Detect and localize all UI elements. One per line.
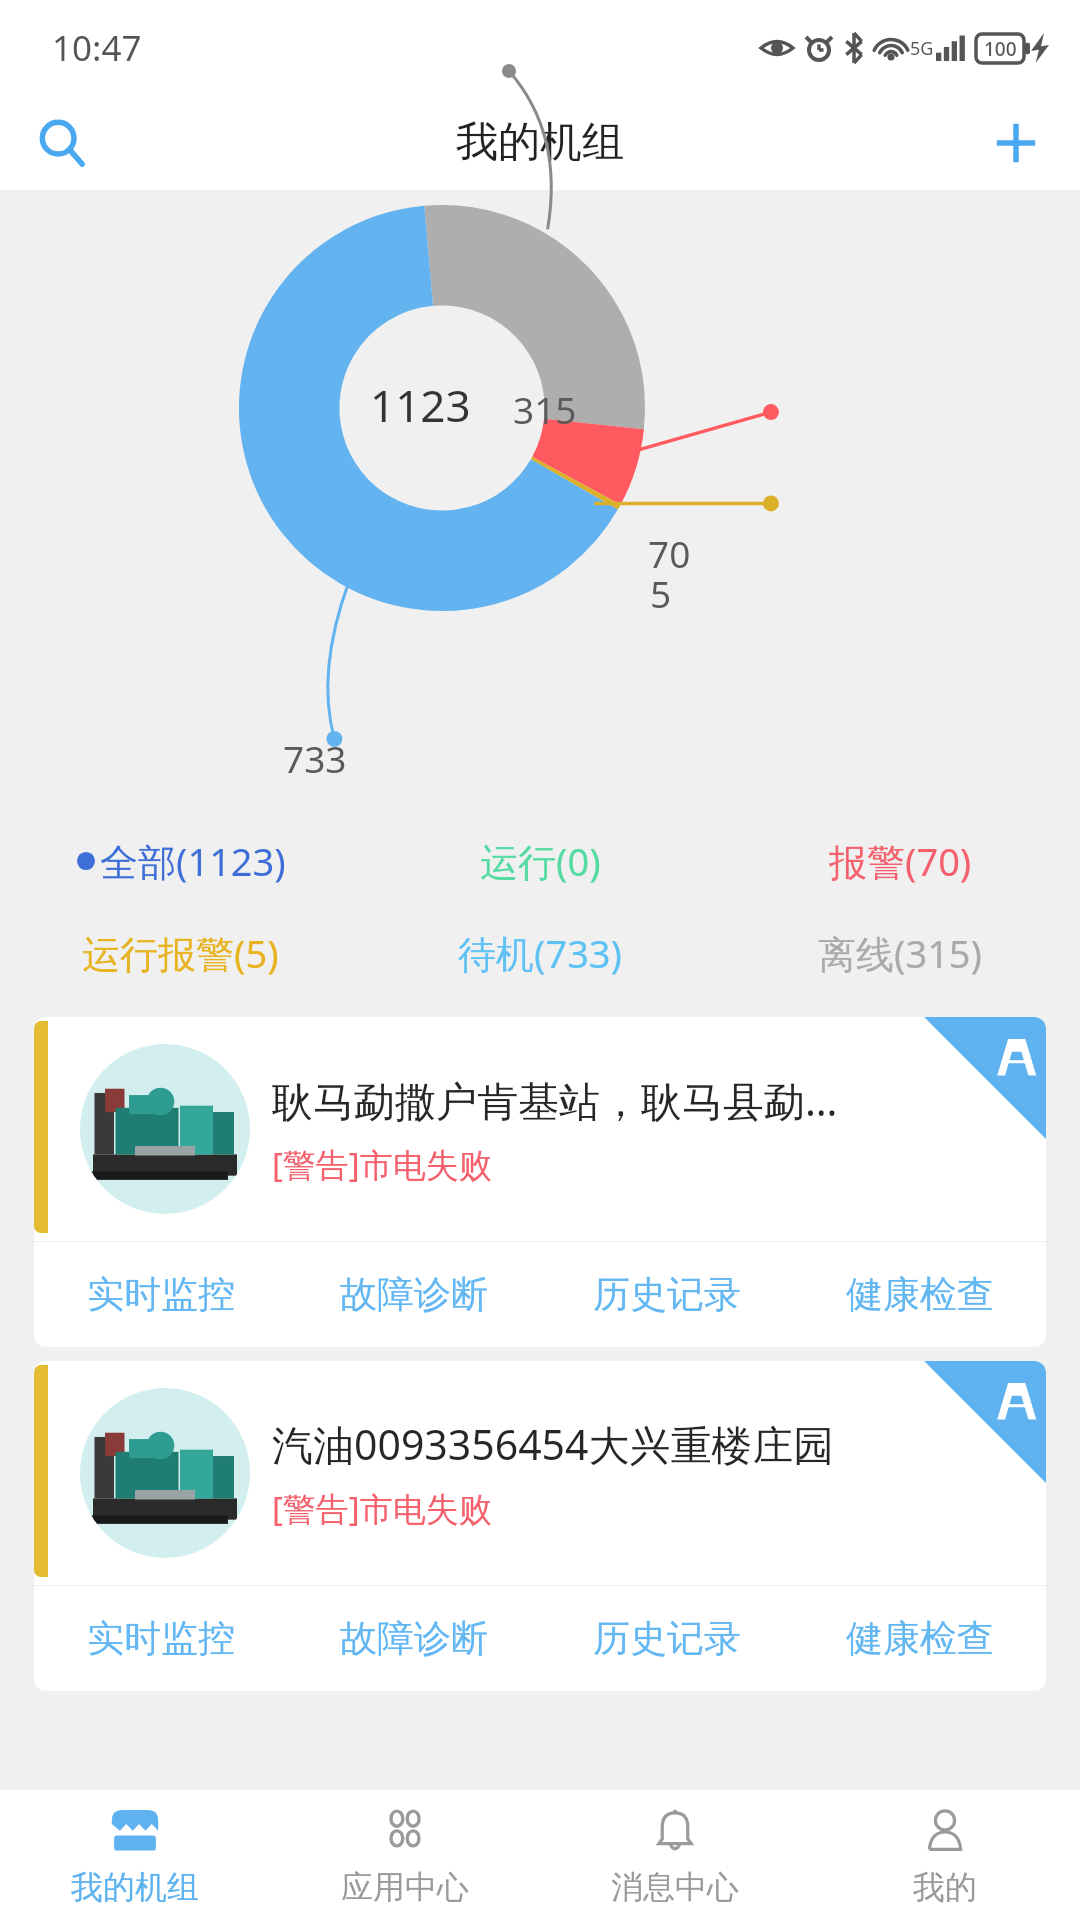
staticText: 全部(1123) — [100, 835, 286, 887]
staticText: 健康检查 — [846, 1271, 994, 1318]
staticText: 运行(0) — [480, 835, 601, 887]
staticText: 故障诊断 — [340, 1615, 488, 1662]
button[interactable]: 待机(733) — [360, 907, 720, 999]
button[interactable]: 健康检查 — [793, 1242, 1046, 1347]
button[interactable]: 运行报警(5) — [0, 907, 360, 999]
button[interactable]: 健康检查 — [793, 1586, 1046, 1691]
staticText: 实时监控 — [87, 1271, 235, 1318]
staticText: 汽油0093356454大兴重楼庄园 — [272, 1416, 835, 1472]
staticText: 故障诊断 — [340, 1271, 488, 1318]
button[interactable]: 报警(70) — [720, 815, 1080, 907]
button[interactable]: 故障诊断 — [287, 1586, 540, 1691]
button[interactable]: Search — [22, 103, 102, 183]
button[interactable]: 应用中心 — [270, 1790, 540, 1920]
staticText: 5G — [910, 36, 934, 61]
staticText: 消息中心 — [611, 1867, 739, 1907]
staticText: 待机(733) — [458, 927, 623, 979]
staticText: [警告]市电失败 — [272, 1486, 492, 1531]
button[interactable]: 汽油0093356454大兴重楼庄园 — [34, 1361, 1046, 1691]
staticText: 我的机组 — [71, 1867, 199, 1907]
staticText: 70 — [648, 528, 691, 578]
staticText: [警告]市电失败 — [272, 1142, 492, 1187]
button[interactable]: 故障诊断 — [287, 1242, 540, 1347]
staticText: 315 — [513, 384, 577, 434]
staticText: 离线(315) — [818, 927, 983, 979]
button[interactable]: 耿马勐撒户肯基站，耿马县勐… — [34, 1017, 1046, 1347]
staticText: 100 — [984, 36, 1017, 62]
staticText: 历史记录 — [593, 1271, 741, 1318]
button[interactable]: 我的 — [810, 1790, 1080, 1920]
button[interactable]: 实时监控 — [34, 1242, 287, 1347]
staticText: 健康检查 — [846, 1615, 994, 1662]
button[interactable]: 运行(0) — [360, 815, 720, 907]
button[interactable]: Add — [976, 103, 1056, 183]
staticText: 733 — [283, 733, 347, 783]
staticText: 耿马勐撒户肯基站，耿马县勐… — [272, 1072, 838, 1128]
button[interactable]: 历史记录 — [540, 1242, 793, 1347]
staticText: 1123 — [370, 375, 471, 435]
staticText: 实时监控 — [87, 1615, 235, 1662]
staticText: 运行报警(5) — [82, 927, 279, 979]
staticText: 历史记录 — [593, 1615, 741, 1662]
button[interactable]: 消息中心 — [540, 1790, 810, 1920]
staticText: 我的 — [913, 1867, 977, 1907]
button[interactable]: 实时监控 — [34, 1586, 287, 1691]
staticText: 报警(70) — [829, 835, 972, 887]
staticText: 应用中心 — [341, 1867, 469, 1907]
staticText: 我的机组 — [456, 116, 624, 169]
button[interactable]: 我的机组 — [0, 1790, 270, 1920]
button[interactable]: 离线(315) — [720, 907, 1080, 999]
button[interactable]: 全部(1123) — [0, 815, 360, 907]
button[interactable]: 历史记录 — [540, 1586, 793, 1691]
staticText: 5 — [650, 568, 672, 618]
staticText: 10:47 — [52, 24, 142, 72]
